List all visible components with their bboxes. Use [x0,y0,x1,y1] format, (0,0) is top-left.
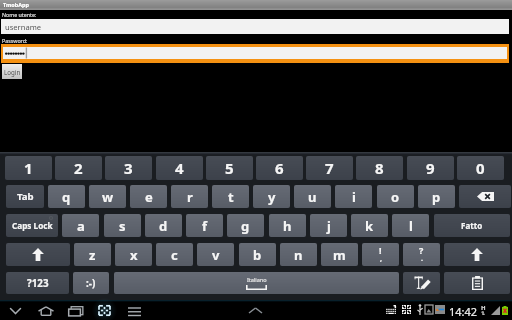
staticText: c [171,246,178,264]
staticText: :-) [86,277,96,290]
staticText: Tab [17,190,34,203]
staticText: 2 [74,158,83,178]
button[interactable]: j [310,214,347,237]
staticText: ⇅ [481,310,486,316]
button[interactable]: 0 [457,156,504,180]
button[interactable]: r [171,185,208,208]
staticText: r [187,188,193,206]
staticText: m [333,246,346,264]
button[interactable]: d [145,214,182,237]
staticText: , [380,254,382,264]
button[interactable]: u [294,185,331,208]
button[interactable]: Tab [6,185,44,208]
button[interactable]: Recent apps [64,301,87,320]
button[interactable]: 2 [55,156,102,180]
staticText: 7 [325,158,334,178]
button[interactable]: v [197,243,234,266]
button[interactable]: 4 [156,156,203,180]
button[interactable]: username [1,19,509,34]
staticText: TmobApp [3,1,29,8]
button[interactable]: Shift [444,243,510,266]
staticText: 9 [426,158,435,178]
staticText: k [365,217,374,235]
staticText: p [432,188,441,206]
button[interactable]: ?123 [6,272,69,294]
button[interactable]: f [186,214,223,237]
button[interactable]: 3 [105,156,152,180]
staticText: n [294,246,303,264]
button[interactable]: Fatto [434,214,510,237]
staticText: Caps Lock [12,220,53,231]
button[interactable] [3,47,507,59]
button[interactable]: i [335,185,372,208]
button[interactable]: m [321,243,358,266]
staticText: 0 [476,158,485,178]
button[interactable]: Caps Lock [6,214,58,237]
staticText: v [212,246,220,264]
button[interactable]: Menu [123,302,146,320]
button[interactable]: Space [114,272,399,294]
button[interactable]: Shift [6,243,70,266]
staticText: x [130,246,138,264]
button[interactable]: h [269,214,306,237]
staticText: ? [419,244,424,256]
staticText: z [89,246,96,264]
staticText: e [145,188,153,206]
staticText: Login [4,68,21,76]
button[interactable]: Login [2,64,22,79]
staticText: o [391,188,400,206]
button[interactable]: ? [403,243,440,266]
button[interactable]: 1 [5,156,52,180]
staticText: u [308,188,317,206]
button[interactable]: z [74,243,111,266]
staticText: j [327,217,331,235]
button[interactable]: o [377,185,414,208]
button[interactable]: Home [34,301,57,320]
button[interactable]: t [212,185,249,208]
staticText: ! [379,244,382,256]
button[interactable]: s [104,214,141,237]
button[interactable]: k [351,214,388,237]
staticText: 6 [275,158,284,178]
button[interactable]: Backspace [459,185,511,208]
staticText: l [409,217,413,235]
staticText: 4 [175,158,184,178]
button[interactable]: b [239,243,276,266]
staticText: Nome utente: [2,11,37,18]
button[interactable]: Hide keyboard [4,301,27,320]
button[interactable]: n [280,243,317,266]
staticText: 5 [225,158,234,178]
staticText: b [253,246,262,264]
staticText: Password: [2,37,28,44]
staticText: 14:42 [449,304,478,319]
button[interactable]: x [115,243,152,266]
button[interactable]: 5 [206,156,253,180]
staticText: f [202,217,208,235]
staticText: s [119,217,126,235]
button[interactable]: :-) [73,272,109,294]
button[interactable]: 7 [306,156,353,180]
button[interactable]: y [253,185,290,208]
staticText: t [228,188,234,206]
button[interactable]: 8 [356,156,403,180]
button[interactable]: 9 [407,156,454,180]
button[interactable]: ! [362,243,399,266]
button[interactable]: e [130,185,167,208]
staticText: y [268,188,276,206]
button[interactable]: Screenshot [93,301,116,320]
staticText: ?123 [27,277,49,290]
button[interactable]: Clipboard [444,272,510,294]
button[interactable]: g [227,214,264,237]
button[interactable]: w [89,185,126,208]
button[interactable]: p [418,185,455,208]
button[interactable]: q [48,185,85,208]
button[interactable]: Handwriting input [403,272,440,294]
staticText: . [421,254,423,264]
button[interactable]: c [156,243,193,266]
staticText: d [159,217,168,235]
staticText: H [481,304,486,312]
staticText: h [283,217,292,235]
button[interactable]: 6 [256,156,303,180]
button[interactable]: a [62,214,99,237]
button[interactable]: l [392,214,429,237]
